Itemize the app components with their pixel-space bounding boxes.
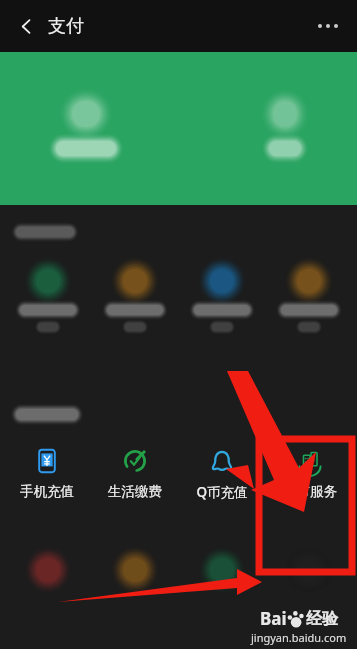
button[interactable]: Back (8, 8, 44, 44)
staticText: 手机充值 (20, 483, 74, 500)
button[interactable]: 城市服务 (270, 446, 350, 502)
staticText: 生活缴费 (108, 483, 162, 500)
button[interactable]: 手机充值 (7, 446, 87, 502)
button[interactable]: 生活缴费 (95, 446, 175, 502)
button[interactable]: More options (307, 5, 349, 47)
staticText: jingyan.baidu.com (251, 630, 347, 645)
button[interactable]: Q币充值 (182, 446, 262, 503)
staticText: Bai (260, 607, 287, 630)
staticText: 支付 (48, 15, 84, 38)
staticText: 城市服务 (283, 483, 337, 500)
staticText: 经验 (306, 609, 338, 629)
staticText: Q币充值 (196, 483, 248, 501)
